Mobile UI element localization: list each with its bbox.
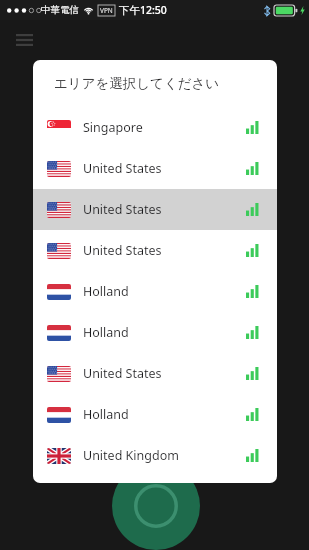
- staticText: United States: [83, 160, 162, 177]
- staticText: 下午12:50: [119, 3, 167, 17]
- button[interactable]: Holland: [33, 271, 277, 312]
- staticText: United States: [83, 365, 162, 382]
- staticText: United States: [83, 242, 162, 259]
- button[interactable]: United Kingdom: [33, 435, 277, 476]
- button[interactable]: United States: [33, 230, 277, 271]
- staticText: 中華電信: [41, 4, 79, 16]
- button[interactable]: United States: [33, 148, 277, 189]
- staticText: Holland: [83, 283, 129, 300]
- button[interactable]: Connect: [112, 462, 200, 550]
- staticText: エリアを選択してください: [54, 75, 220, 92]
- button[interactable]: Holland: [33, 394, 277, 435]
- button[interactable]: United States: [33, 189, 277, 230]
- button[interactable]: Holland: [33, 312, 277, 353]
- button[interactable]: Menu: [8, 24, 40, 56]
- button[interactable]: United States: [33, 353, 277, 394]
- button[interactable]: Singapore: [33, 107, 277, 148]
- staticText: United Kingdom: [83, 447, 179, 464]
- staticText: Holland: [83, 406, 129, 423]
- staticText: United States: [83, 201, 162, 218]
- staticText: Holland: [83, 324, 129, 341]
- staticText: VPN: [100, 6, 113, 15]
- staticText: Singapore: [83, 119, 143, 136]
